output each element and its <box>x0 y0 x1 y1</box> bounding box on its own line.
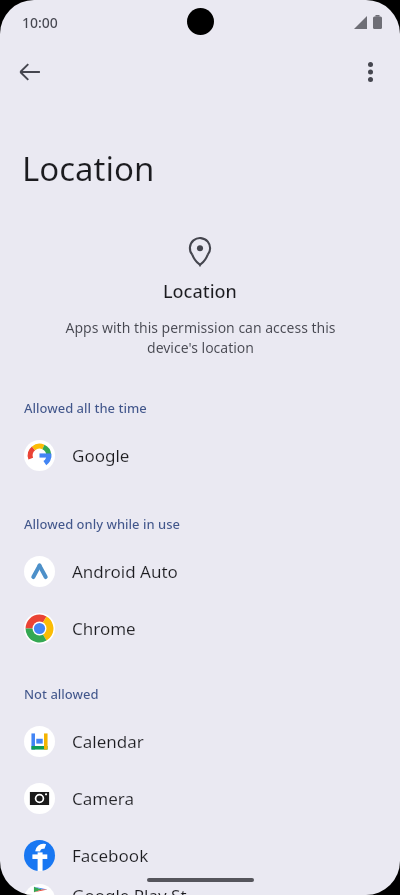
button[interactable]: Camera <box>0 770 400 827</box>
staticText: Not allowed <box>24 685 99 703</box>
staticText: Allowed all the time <box>24 399 147 417</box>
staticText: Allowed only while in use <box>24 515 180 533</box>
button[interactable]: Back <box>8 50 52 94</box>
button[interactable]: Android Auto <box>0 543 400 600</box>
staticText: Android Auto <box>72 560 178 583</box>
staticText: Facebook <box>72 844 149 867</box>
button[interactable]: Facebook <box>0 827 400 884</box>
button[interactable]: Google <box>0 427 400 484</box>
staticText: Location <box>22 146 155 191</box>
staticText: Location <box>163 279 237 304</box>
button[interactable]: More options <box>348 50 392 94</box>
staticText: Apps with this permission can access thi… <box>65 318 336 357</box>
staticText: Google <box>72 444 130 467</box>
button[interactable]: Calendar <box>0 713 400 770</box>
button[interactable]: Google Play St... <box>0 884 400 895</box>
staticText: Camera <box>72 787 134 810</box>
staticText: Google Play St... <box>72 884 201 895</box>
staticText: Chrome <box>72 617 136 640</box>
staticText: 10:00 <box>22 13 58 32</box>
button[interactable]: Chrome <box>0 600 400 657</box>
staticText: Calendar <box>72 730 144 753</box>
